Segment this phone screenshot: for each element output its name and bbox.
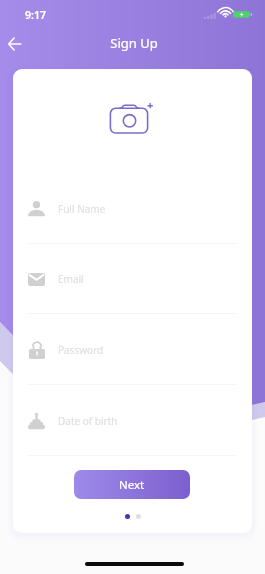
- button[interactable]: Add profile photo: [108, 100, 154, 138]
- staticText: Email: [58, 272, 84, 286]
- staticText: Password: [58, 343, 104, 357]
- staticText: Next: [119, 477, 145, 493]
- button[interactable]: Back: [0, 29, 29, 58]
- button[interactable]: Email: [28, 261, 237, 296]
- staticText: Full Name: [58, 202, 106, 216]
- button[interactable]: Full Name: [28, 191, 237, 226]
- staticText: Date of birth: [58, 414, 118, 428]
- button[interactable]: Date of birth: [28, 403, 237, 438]
- button[interactable]: Page 1: [125, 514, 130, 519]
- staticText: 9:17: [25, 8, 46, 22]
- button[interactable]: Password: [28, 332, 237, 367]
- staticText: Sign Up: [110, 34, 158, 52]
- button[interactable]: Page 2: [136, 514, 141, 519]
- button[interactable]: Next: [74, 470, 190, 499]
